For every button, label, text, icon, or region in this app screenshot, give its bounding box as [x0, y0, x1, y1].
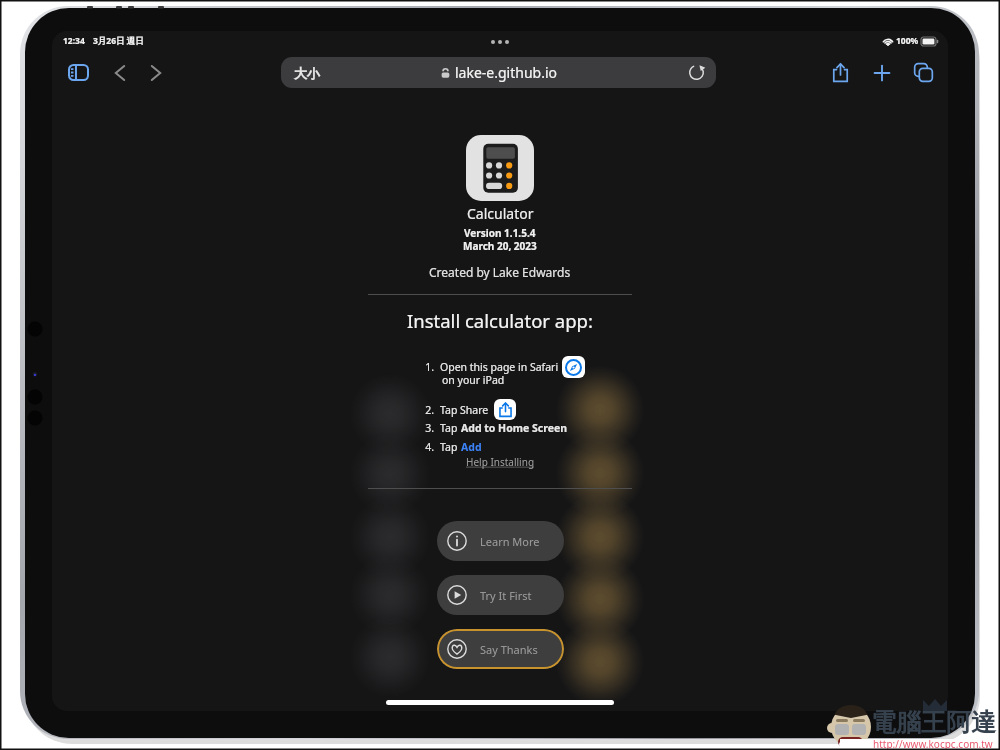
- staticText: 12:34: [63, 35, 85, 47]
- staticText: Open this page in Safari: [440, 360, 559, 374]
- staticText: on your iPad: [442, 373, 505, 387]
- staticText: http://www.kocpc.com.tw: [873, 737, 993, 750]
- button[interactable]: Tabs: [913, 62, 934, 83]
- staticText: Learn More: [480, 534, 540, 549]
- staticText: Install calculator app:: [407, 308, 593, 333]
- staticText: 王: [921, 707, 946, 738]
- staticText: 3.: [416, 421, 434, 435]
- staticText: 阿: [946, 707, 971, 738]
- staticText: Try It First: [480, 588, 532, 603]
- staticText: Calculator: [467, 204, 534, 223]
- button[interactable]: New tab: [872, 63, 892, 83]
- button[interactable]: Try It First: [437, 575, 564, 615]
- staticText: Tap: [440, 421, 461, 435]
- button[interactable]: 大小: [281, 57, 716, 88]
- button[interactable]: Say Thanks: [437, 629, 564, 669]
- staticText: 達: [971, 707, 996, 738]
- button[interactable]: Forward: [149, 65, 163, 81]
- staticText: 2.: [416, 403, 434, 417]
- staticText: 4.: [416, 440, 434, 454]
- staticText: Tap Share: [440, 403, 489, 417]
- button[interactable]: Sidebar: [68, 64, 89, 81]
- staticText: 3月26日 週日: [93, 35, 144, 47]
- button[interactable]: Add: [461, 440, 482, 454]
- staticText: Version 1.1.5.4: [464, 226, 536, 240]
- staticText: 電: [871, 707, 896, 738]
- staticText: 腦: [896, 707, 921, 738]
- button[interactable]: Reload: [688, 64, 705, 81]
- button[interactable]: Help Installing: [466, 455, 535, 469]
- staticText: March 20, 2023: [463, 239, 537, 253]
- button[interactable]: Share: [830, 62, 851, 83]
- button[interactable]: Back: [113, 65, 127, 81]
- staticText: lake-e.github.io: [455, 63, 558, 82]
- staticText: 大小: [294, 65, 320, 81]
- staticText: Created by Lake Edwards: [429, 264, 571, 280]
- staticText: 100%: [896, 35, 919, 47]
- staticText: 1.: [416, 360, 434, 374]
- button[interactable]: Learn More: [437, 521, 564, 561]
- staticText: Say Thanks: [480, 642, 538, 657]
- staticText: Add to Home Screen: [461, 421, 567, 435]
- staticText: Tap: [440, 440, 461, 454]
